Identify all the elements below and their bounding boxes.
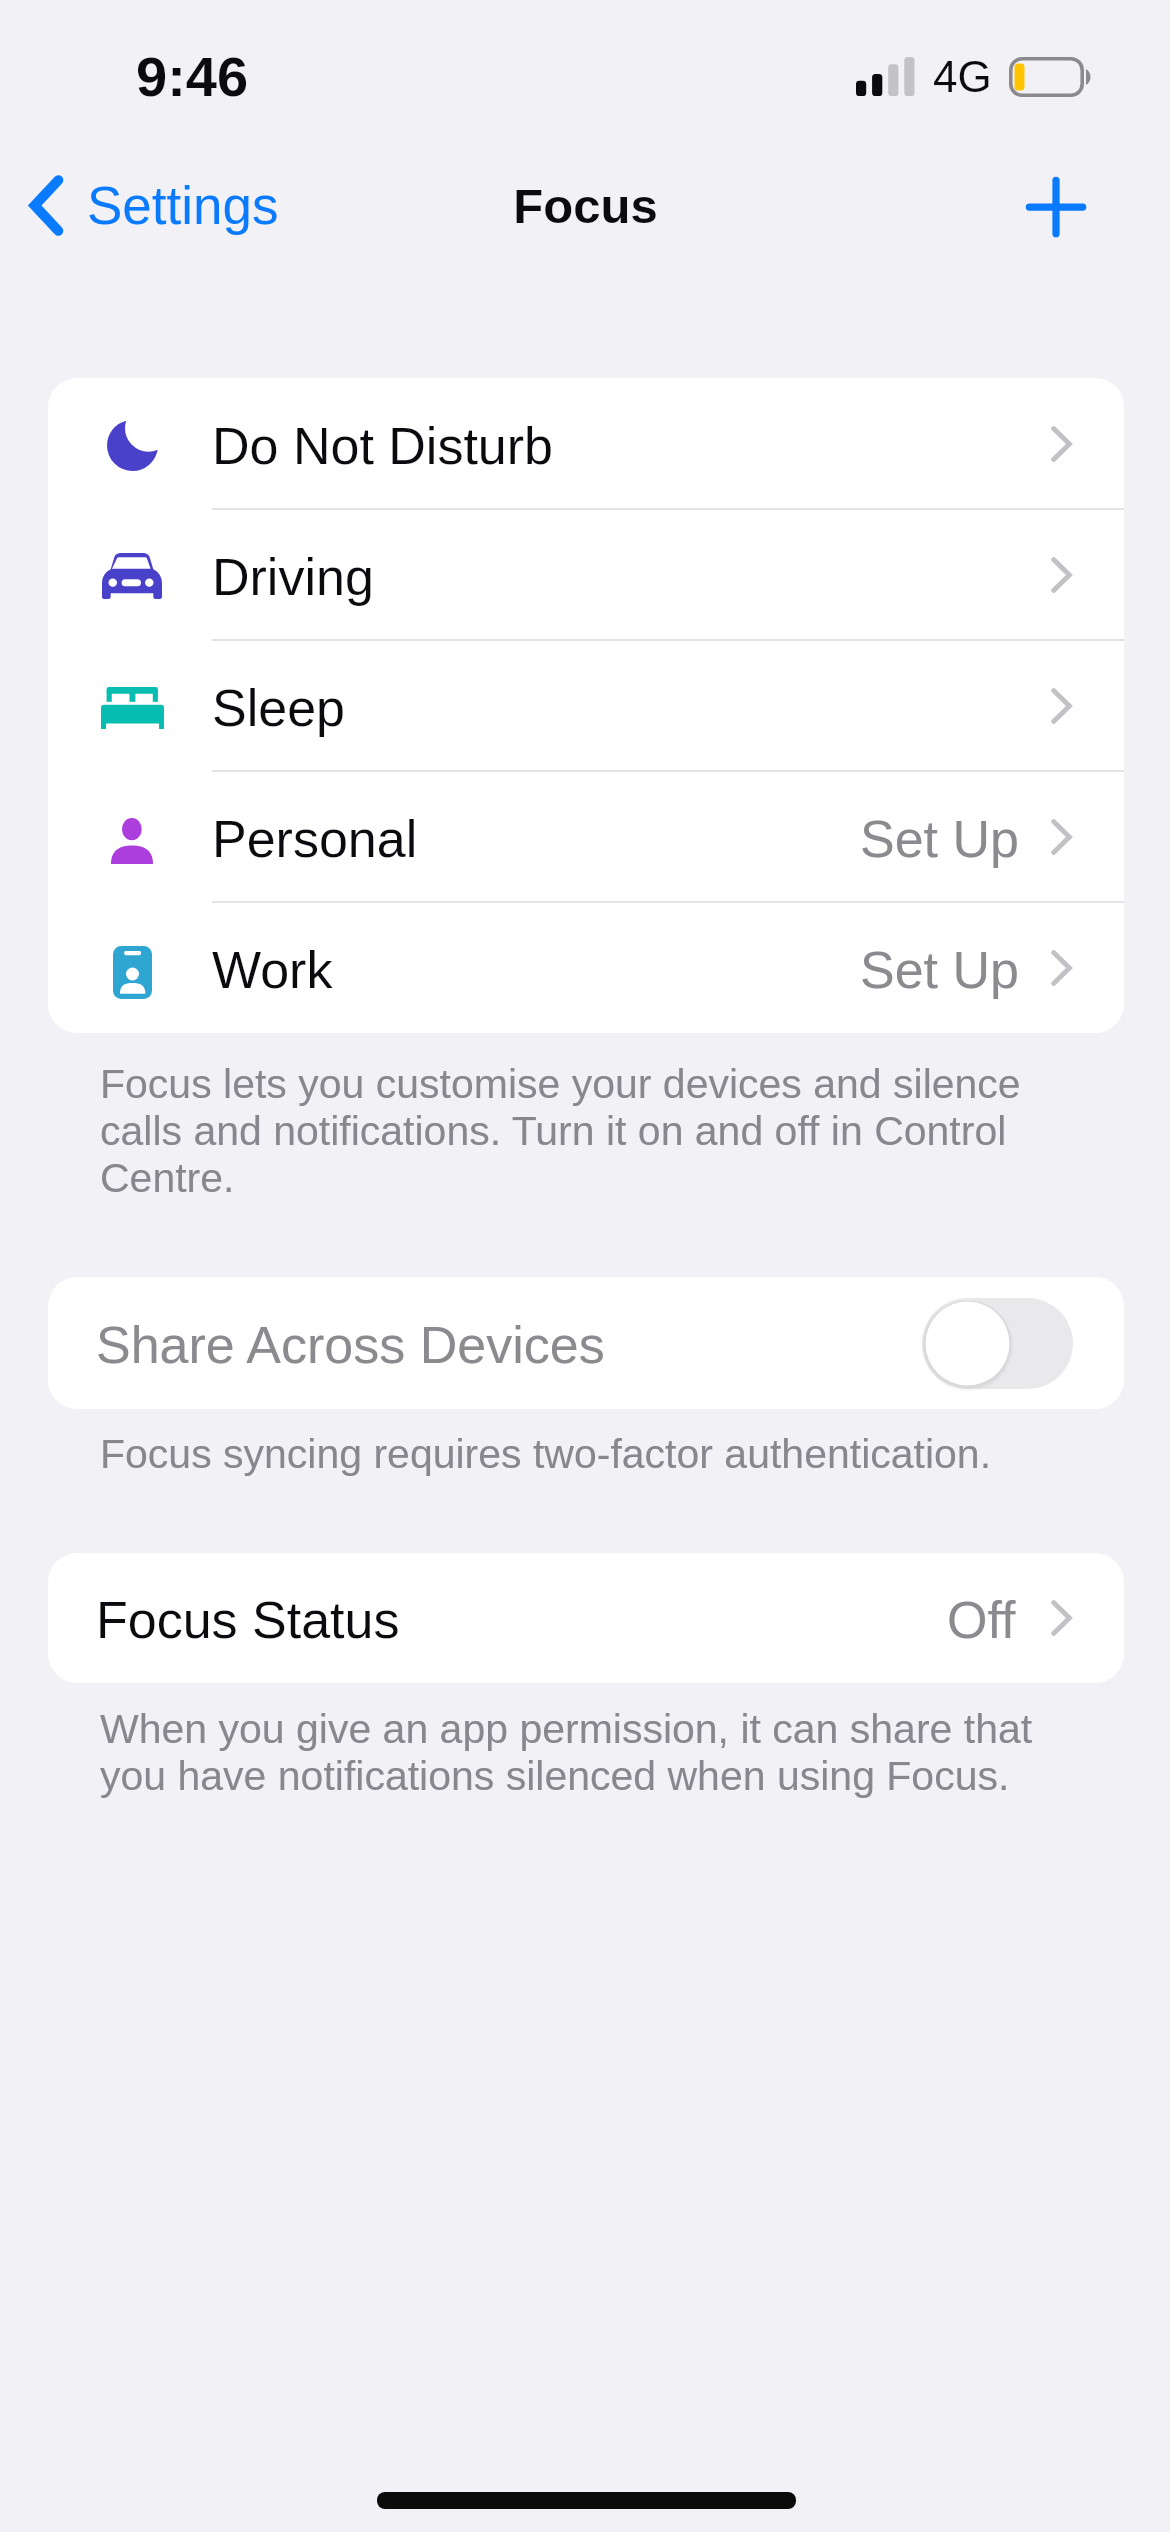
staticText: Set Up: [860, 810, 1019, 868]
button[interactable]: Work: [48, 902, 1124, 1033]
staticText: 4G: [933, 52, 992, 101]
button[interactable]: Focus Status: [48, 1553, 1124, 1683]
staticText: Focus: [513, 179, 658, 234]
staticText: Sleep: [212, 679, 345, 737]
staticText: Focus lets you customise your devices an…: [100, 1061, 1050, 1200]
button[interactable]: Driving: [48, 509, 1124, 640]
staticText: Share Across Devices: [96, 1316, 605, 1374]
staticText: When you give an app permission, it can …: [100, 1706, 1050, 1798]
button[interactable]: Sleep: [48, 640, 1124, 771]
button[interactable]: Add new Focus: [1010, 161, 1102, 253]
staticText: Driving: [212, 548, 374, 606]
staticText: Settings: [87, 176, 279, 235]
staticText: Off: [947, 1591, 1016, 1649]
staticText: Set Up: [860, 941, 1019, 999]
staticText: Focus syncing requires two-factor authen…: [100, 1431, 1050, 1477]
button[interactable]: Share Across Devices: [48, 1277, 1124, 1409]
staticText: Work: [212, 941, 333, 999]
staticText: Focus Status: [96, 1591, 400, 1649]
staticText: Do Not Disturb: [212, 417, 553, 475]
staticText: Personal: [212, 810, 418, 868]
button[interactable]: Do Not Disturb: [48, 378, 1124, 509]
button[interactable]: Personal: [48, 771, 1124, 902]
button[interactable]: Settings: [16, 168, 299, 243]
button[interactable]: Share Across Devices toggle: [922, 1298, 1073, 1389]
staticText: 9:46: [136, 45, 249, 108]
